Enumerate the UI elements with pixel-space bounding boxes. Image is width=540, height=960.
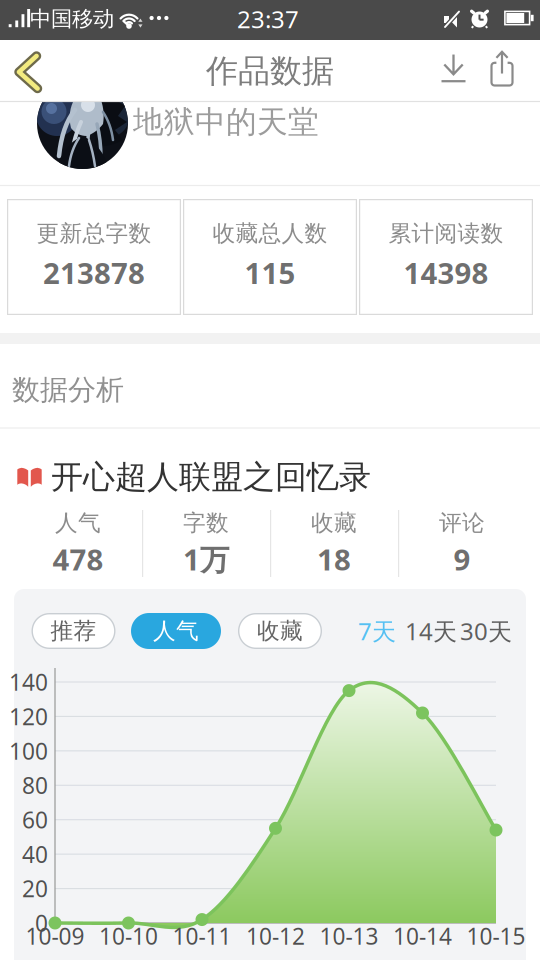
staticText: 14398 [403,253,488,292]
staticText: 10-09 [25,921,84,951]
staticText: 10-12 [246,921,305,951]
staticText: 120 [9,701,48,731]
staticText: 作品数据 [206,51,334,91]
button[interactable]: 14天 [405,615,457,647]
staticText: 人气 [55,509,101,537]
staticText: 数据分析 [12,373,124,407]
button[interactable]: 7天 [358,615,396,647]
staticText: 10-15 [466,921,525,951]
staticText: 23:37 [237,3,299,35]
staticText: 10-14 [393,921,452,951]
staticText: 评论 [439,509,485,537]
staticText: 10-10 [99,921,158,951]
button[interactable]: 推荐 [31,613,115,649]
staticText: 478 [52,539,103,578]
staticText: 14天 [405,615,457,647]
staticText: 收藏总人数 [212,220,327,247]
button[interactable]: 收藏 [238,613,322,649]
staticText: 30天 [460,615,512,647]
staticText: 60 [22,805,48,835]
staticText: 100 [9,736,48,766]
button[interactable]: 30天 [460,615,512,647]
staticText: 累计阅读数 [388,220,503,247]
staticText: 10-11 [172,921,231,951]
staticText: 收藏 [257,617,303,645]
staticText: 7天 [358,615,396,647]
staticText: 9 [453,539,470,578]
staticText: 115 [244,253,295,292]
staticText: 140 [9,667,48,697]
staticText: 字数 [183,509,229,537]
staticText: 地狱中的天堂 [133,103,319,141]
staticText: 0 [35,908,48,938]
staticText: 18 [317,539,351,578]
staticText: 1万 [183,539,229,578]
staticText: 80 [22,770,48,800]
button[interactable]: Download [431,44,475,96]
staticText: 人气 [153,617,199,645]
staticText: 10-13 [319,921,378,951]
button[interactable]: Back [5,44,51,100]
staticText: 收藏 [311,509,357,537]
staticText: 213878 [43,253,145,292]
staticText: 更新总字数 [36,220,151,247]
staticText: 40 [22,839,48,869]
staticText: 推荐 [50,617,96,645]
staticText: 开心超人联盟之回忆录 [51,457,371,497]
staticText: 20 [22,873,48,904]
staticText: 中国移动 [30,6,114,32]
button[interactable]: 人气 [131,613,221,649]
button[interactable]: Share [480,43,524,95]
